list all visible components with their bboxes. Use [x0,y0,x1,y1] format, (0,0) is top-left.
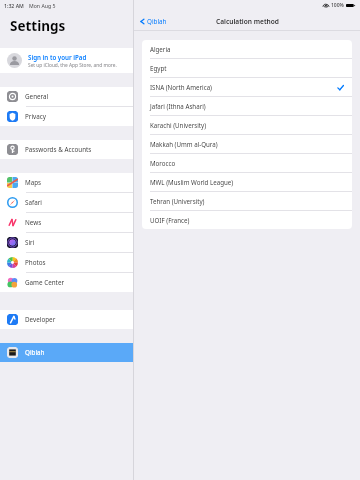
staticText: Qiblah [147,17,167,26]
button[interactable]: General [0,87,133,106]
staticText: Game Center [25,278,65,287]
staticText: Jafari (Ithna Ashari) [150,102,206,110]
staticText: Developer [25,315,56,324]
button[interactable]: Game Center [0,273,133,292]
staticText: Sign in to your iPad [28,53,87,61]
staticText: Settings [10,17,66,35]
staticText: 100% [331,2,344,9]
button[interactable]: Siri [0,233,133,252]
staticText: 1:32 AM [4,2,24,9]
button[interactable]: Tehran (University) [142,192,352,210]
button[interactable]: Passwords & Accounts [0,140,133,159]
button[interactable]: News [0,213,133,232]
button[interactable]: Privacy [0,107,133,126]
button[interactable]: Jafari (Ithna Ashari) [142,97,352,115]
staticText: Set up iCloud, the App Store, and more. [28,62,117,69]
button[interactable]: Safari [0,193,133,212]
staticText: Karachi (University) [150,121,206,129]
button[interactable]: Makkah (Umm al-Qura) [142,135,352,153]
button[interactable]: Karachi (University) [142,116,352,134]
button[interactable]: Morocco [142,154,352,172]
staticText: General [25,92,49,101]
staticText: ISNA (North America) [150,83,212,91]
staticText: Mon Aug 5 [29,2,56,9]
staticText: News [25,218,42,227]
staticText: MWL (Muslim World League) [150,178,234,186]
staticText: Qiblah [25,348,45,357]
button[interactable]: MWL (Muslim World League) [142,173,352,191]
staticText: Photos [25,258,46,267]
staticText: Passwords & Accounts [25,145,92,154]
staticText: Siri [25,238,35,247]
button[interactable]: Developer [0,310,133,329]
staticText: Egypt [150,64,167,72]
button[interactable]: Sign in to your iPad [0,48,133,73]
button[interactable]: ISNA (North America) [142,78,352,96]
button[interactable]: Egypt [142,59,352,77]
staticText: Tehran (University) [150,197,205,205]
button[interactable]: UOIF (France) [142,211,352,229]
staticText: Maps [25,178,42,187]
staticText: Privacy [25,112,47,121]
button[interactable]: Qiblah [0,343,133,362]
button[interactable]: Maps [0,173,133,192]
button[interactable]: Qiblah [134,15,173,28]
button[interactable]: Algeria [142,40,352,58]
staticText: Makkah (Umm al-Qura) [150,140,218,148]
button[interactable]: Photos [0,253,133,272]
staticText: UOIF (France) [150,216,190,224]
staticText: Algeria [150,45,171,53]
staticText: Safari [25,198,42,207]
staticText: Morocco [150,159,176,167]
staticText: Calculation method [216,17,279,26]
